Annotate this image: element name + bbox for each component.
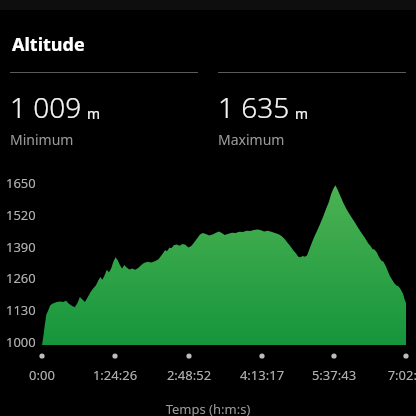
staticText: 1:24:26: [79, 366, 151, 384]
button[interactable]: Altitude: [10, 30, 87, 59]
staticText: 1000: [6, 333, 36, 351]
staticText: 2:48:52: [153, 366, 225, 384]
staticText: Maximum: [218, 130, 285, 149]
staticText: 1390: [6, 238, 36, 256]
staticText: 1650: [6, 174, 36, 192]
staticText: Altitude: [12, 32, 85, 57]
staticText: 7:02:0: [370, 366, 416, 384]
staticText: 0:00: [6, 366, 78, 384]
staticText: 1130: [6, 301, 36, 319]
staticText: m: [295, 104, 309, 123]
staticText: Temps (h:m:s): [0, 400, 416, 416]
staticText: 5:37:43: [298, 366, 370, 384]
staticText: 1 009: [10, 88, 82, 126]
staticText: 1260: [6, 269, 36, 287]
staticText: Minimum: [10, 130, 74, 149]
staticText: 1520: [6, 206, 36, 224]
button[interactable]: 1 009: [10, 72, 198, 149]
staticText: 4:13:17: [226, 366, 298, 384]
button[interactable]: 1 635: [218, 72, 406, 149]
button[interactable]: Altitude chart: [0, 0, 416, 416]
staticText: 1 635: [218, 88, 290, 126]
staticText: m: [87, 104, 101, 123]
